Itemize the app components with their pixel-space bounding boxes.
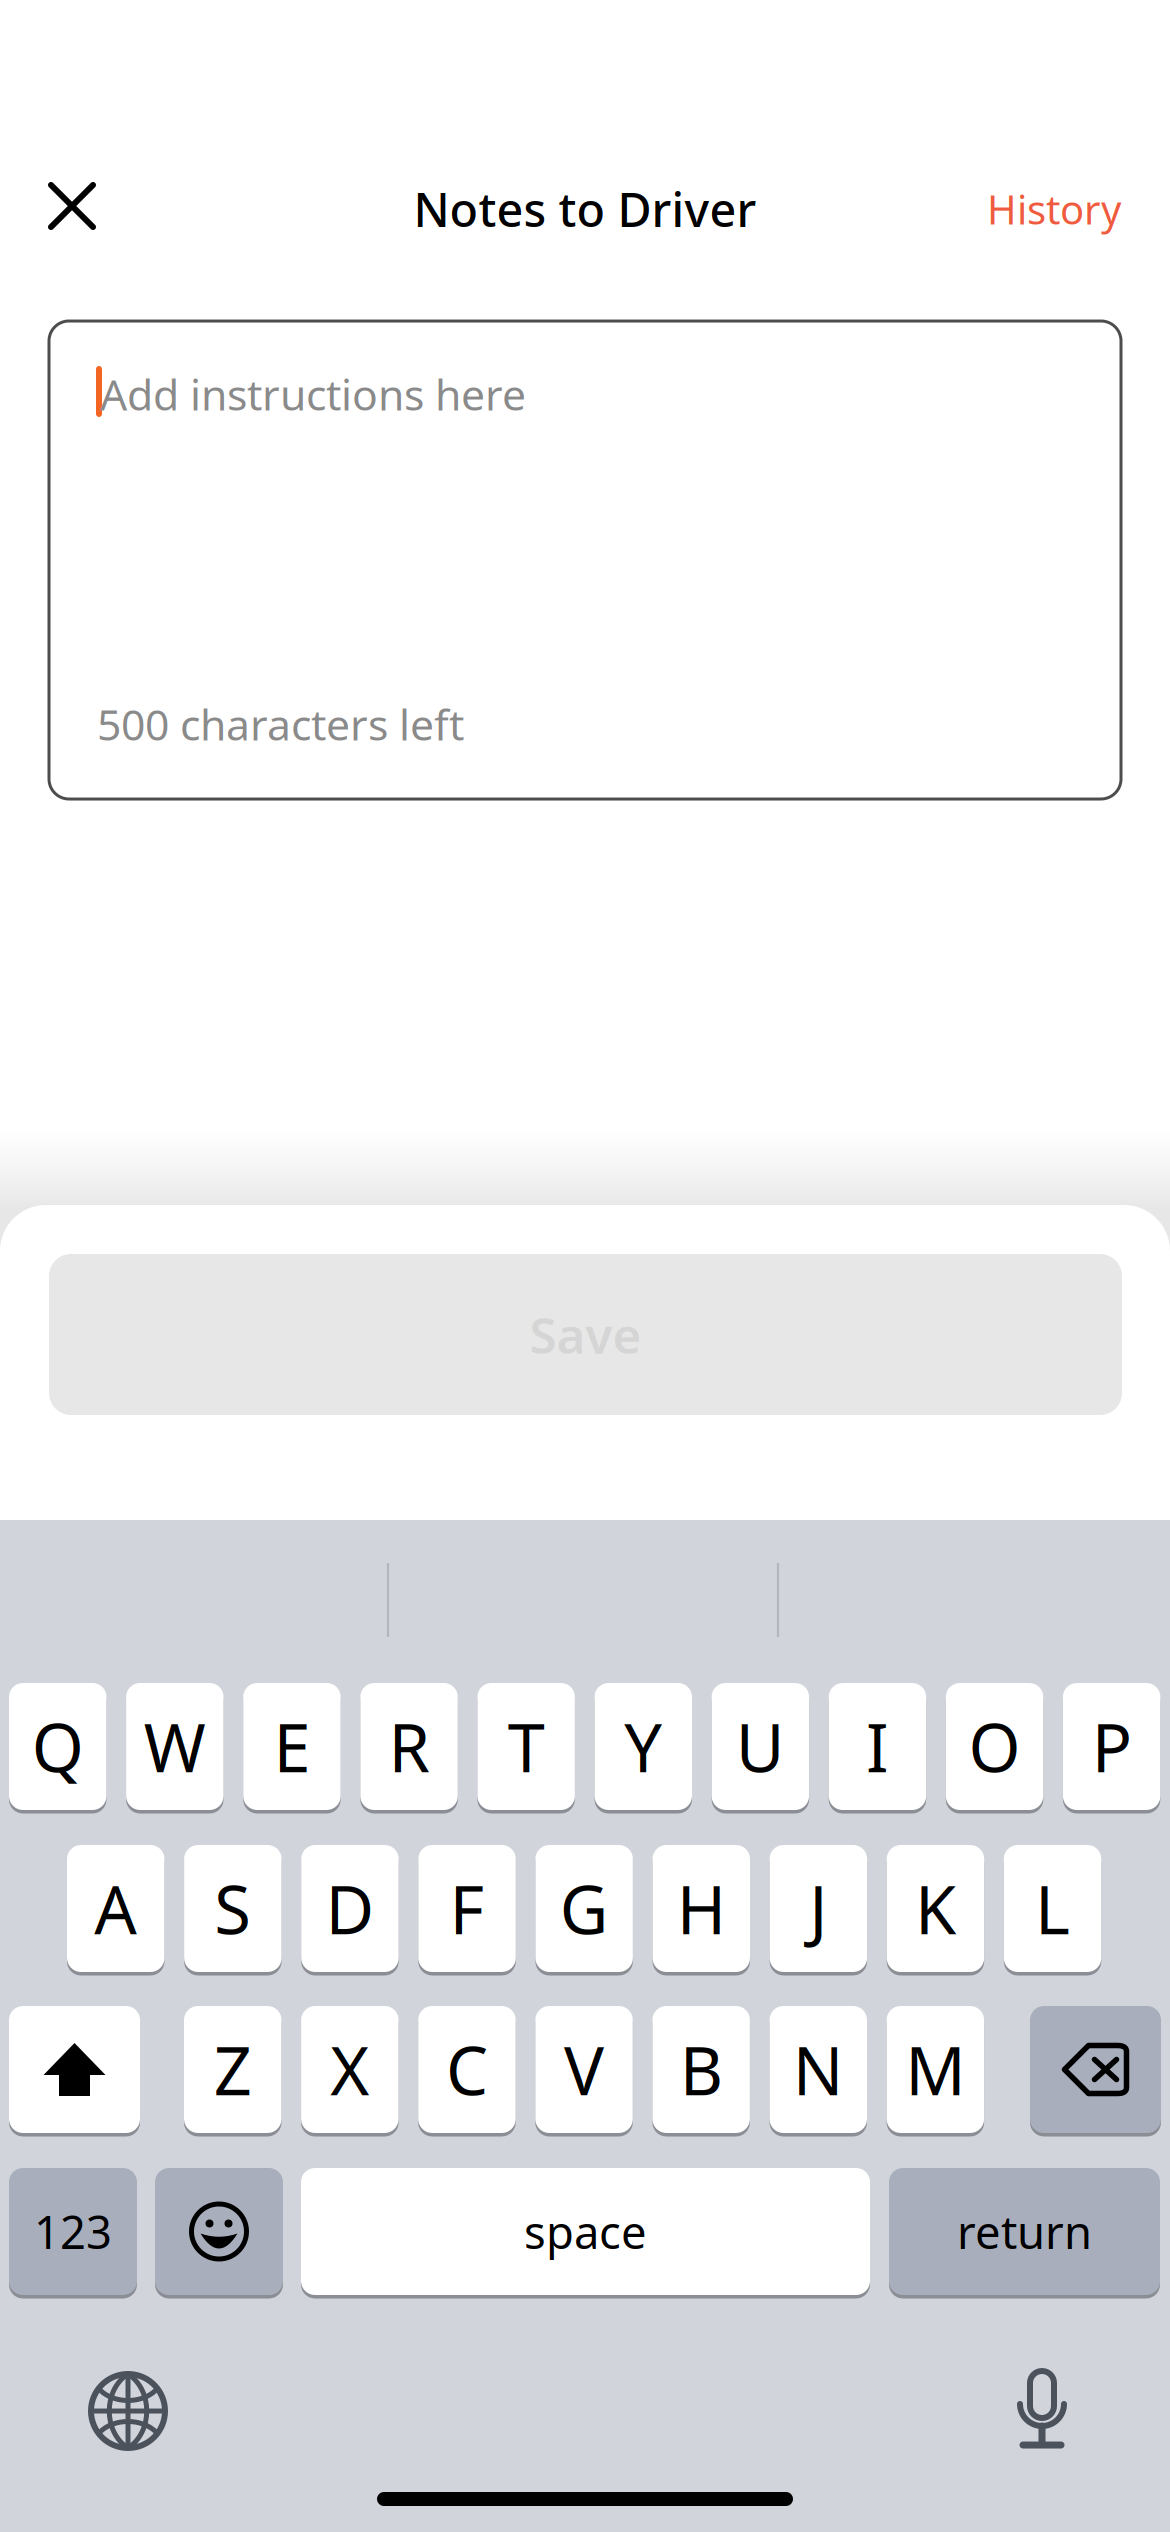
- staticText: space: [524, 2201, 647, 2262]
- button[interactable]: return: [889, 2168, 1160, 2295]
- staticText: P: [1092, 1702, 1132, 1791]
- button[interactable]: Add instructions here: [49, 321, 1121, 799]
- staticText: U: [736, 1702, 785, 1791]
- staticText: V: [564, 2025, 604, 2114]
- staticText: Add instructions here: [100, 366, 526, 422]
- staticText: H: [677, 1864, 726, 1953]
- button[interactable]: J: [770, 1845, 867, 1972]
- button[interactable]: space: [301, 2168, 870, 2295]
- button[interactable]: R: [360, 1683, 458, 1810]
- staticText: X: [330, 2025, 369, 2114]
- button[interactable]: Dictate: [1016, 2366, 1068, 2450]
- staticText: D: [325, 1864, 374, 1953]
- staticText: A: [94, 1864, 137, 1953]
- staticText: 123: [34, 2201, 112, 2262]
- button[interactable]: D: [301, 1845, 399, 1972]
- button[interactable]: F: [418, 1845, 516, 1972]
- button[interactable]: [1030, 2006, 1161, 2133]
- button[interactable]: P: [1063, 1683, 1160, 1810]
- staticText: B: [680, 2025, 723, 2114]
- staticText: S: [214, 1864, 251, 1953]
- staticText: N: [793, 2025, 844, 2114]
- button[interactable]: Z: [184, 2006, 281, 2133]
- button[interactable]: V: [535, 2006, 633, 2133]
- button[interactable]: O: [946, 1683, 1043, 1810]
- button[interactable]: B: [652, 2006, 750, 2133]
- staticText: O: [969, 1702, 1021, 1791]
- staticText: Save: [529, 1302, 641, 1367]
- staticText: R: [388, 1702, 429, 1791]
- staticText: Q: [32, 1702, 84, 1791]
- staticText: C: [446, 2025, 488, 2114]
- staticText: Y: [624, 1702, 662, 1791]
- button[interactable]: H: [652, 1845, 750, 1972]
- button[interactable]: Q: [9, 1683, 106, 1810]
- button[interactable]: T: [477, 1683, 575, 1810]
- button[interactable]: L: [1004, 1845, 1101, 1972]
- staticText: F: [449, 1864, 484, 1953]
- staticText: G: [560, 1864, 609, 1953]
- staticText: Z: [214, 2025, 252, 2114]
- button[interactable]: G: [535, 1845, 633, 1972]
- button[interactable]: N: [769, 2006, 867, 2133]
- button[interactable]: Y: [594, 1683, 692, 1810]
- button[interactable]: E: [243, 1683, 341, 1810]
- button[interactable]: I: [829, 1683, 926, 1810]
- button[interactable]: X: [301, 2006, 399, 2133]
- staticText: J: [809, 1864, 827, 1953]
- button[interactable]: W: [126, 1683, 224, 1810]
- staticText: return: [957, 2201, 1092, 2262]
- staticText: L: [1035, 1864, 1070, 1953]
- button[interactable]: [9, 2006, 140, 2133]
- staticText: M: [905, 2025, 965, 2114]
- button[interactable]: K: [887, 1845, 984, 1972]
- staticText: K: [915, 1864, 956, 1953]
- staticText: I: [866, 1702, 889, 1791]
- button[interactable]: S: [184, 1845, 282, 1972]
- button[interactable]: Switch keyboard: [88, 2371, 168, 2451]
- button[interactable]: C: [418, 2006, 516, 2133]
- staticText: Notes to Driver: [413, 178, 756, 240]
- staticText: T: [508, 1702, 545, 1791]
- staticText: History: [987, 182, 1121, 235]
- button[interactable]: M: [887, 2006, 984, 2133]
- button[interactable]: 123: [9, 2168, 137, 2295]
- button[interactable]: [155, 2168, 283, 2295]
- staticText: E: [273, 1702, 310, 1791]
- button[interactable]: Close: [27, 161, 117, 251]
- button[interactable]: U: [712, 1683, 809, 1810]
- staticText: 500 characters left: [97, 696, 464, 752]
- button[interactable]: A: [67, 1845, 164, 1972]
- button[interactable]: History: [861, 164, 1121, 254]
- staticText: W: [144, 1702, 206, 1791]
